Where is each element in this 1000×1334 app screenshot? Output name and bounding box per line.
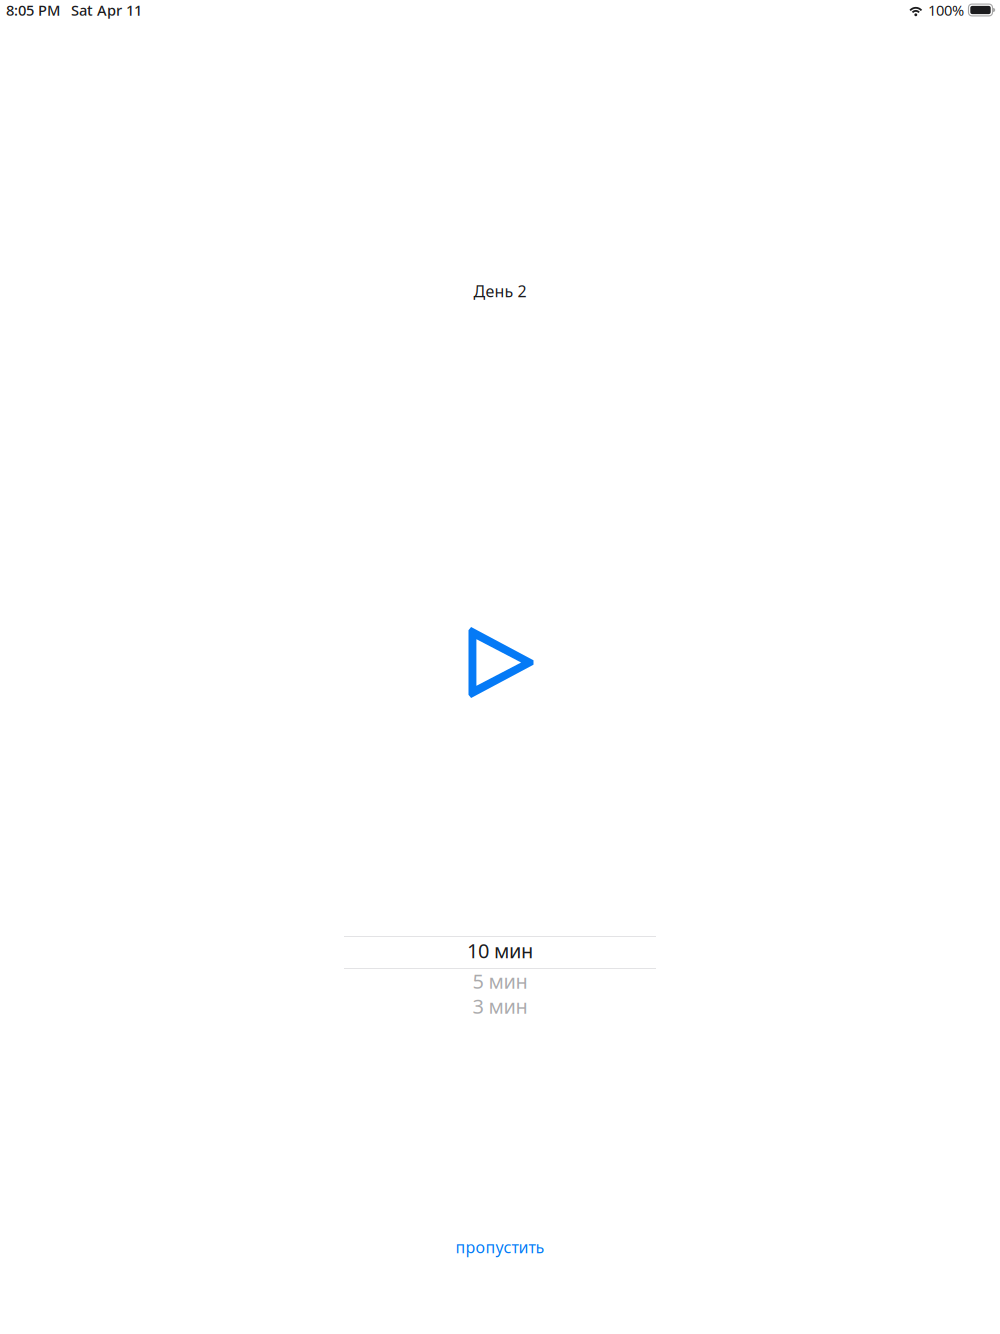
button[interactable]: 3 мин	[344, 993, 656, 1019]
staticText: пропустить	[455, 1236, 544, 1258]
staticText: 100%	[928, 0, 964, 20]
staticText: 10 мин	[467, 937, 533, 964]
button[interactable]: 10 мин	[344, 935, 656, 966]
button[interactable]: пропустить	[400, 1232, 600, 1262]
button[interactable]: Play	[468, 627, 533, 698]
staticText: 5 мин	[472, 968, 527, 994]
staticText: 8:05 PM	[6, 0, 60, 20]
button[interactable]: 5 мин	[344, 968, 656, 994]
staticText: Sat Apr 11	[71, 0, 142, 20]
staticText: 3 мин	[472, 993, 527, 1019]
staticText: День 2	[473, 280, 526, 302]
